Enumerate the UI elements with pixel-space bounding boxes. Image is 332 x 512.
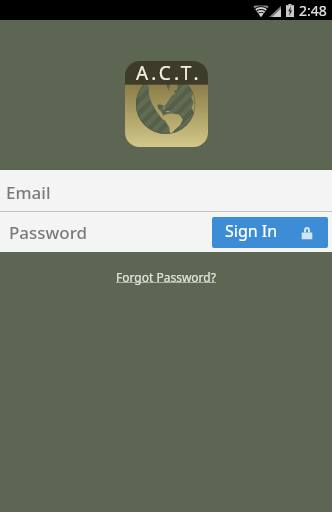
staticText: Password xyxy=(9,221,88,244)
button[interactable]: Email xyxy=(0,170,332,211)
button[interactable]: Sign In xyxy=(212,217,328,248)
button[interactable]: Password xyxy=(0,212,332,252)
staticText: Email xyxy=(6,181,51,204)
staticText: A.C.T. xyxy=(136,60,202,86)
other: Sign In xyxy=(301,225,313,240)
staticText: 2:48 xyxy=(299,1,327,20)
staticText: Sign In xyxy=(225,220,278,242)
button[interactable]: Forgot Password? xyxy=(110,267,222,289)
